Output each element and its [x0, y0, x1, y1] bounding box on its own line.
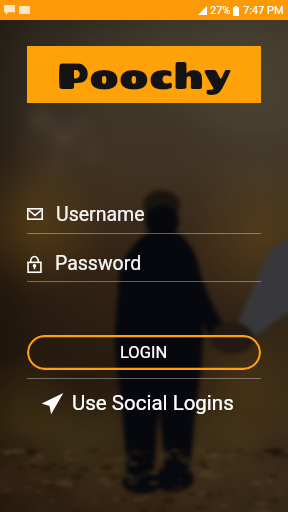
button[interactable]: Use Social Logins	[41, 389, 256, 417]
staticText: Use Social Logins	[72, 391, 234, 415]
staticText: Username	[56, 203, 145, 226]
staticText: 7:47 PM	[243, 4, 284, 17]
button[interactable]: Poochy	[27, 46, 261, 103]
staticText: Password	[55, 252, 142, 275]
staticText: 27%	[210, 4, 231, 17]
staticText: LOGIN	[120, 343, 168, 362]
staticText: Poochy	[57, 53, 232, 97]
button[interactable]: Username	[27, 201, 261, 227]
button[interactable]: Password	[27, 250, 261, 276]
button[interactable]: LOGIN	[27, 335, 261, 370]
